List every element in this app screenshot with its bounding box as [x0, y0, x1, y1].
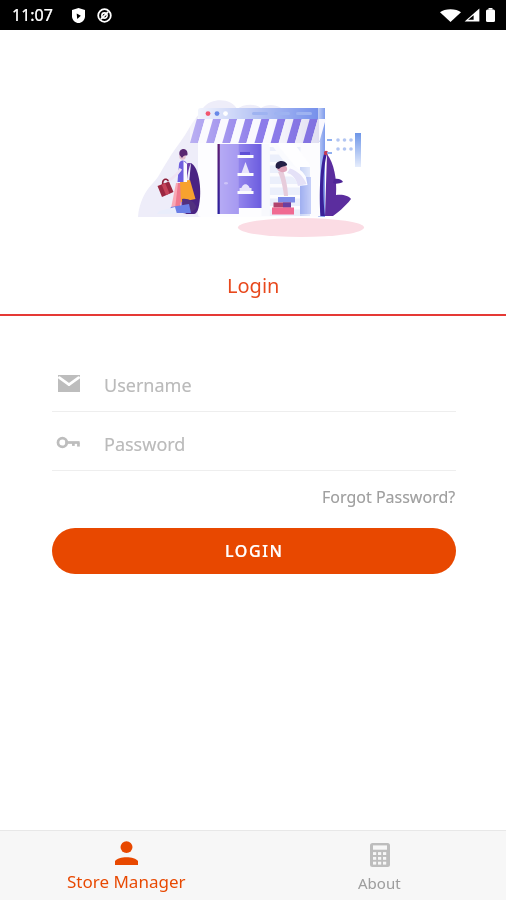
- staticText: Password: [104, 432, 186, 457]
- button[interactable]: Forgot Password?: [322, 486, 456, 508]
- other: Do not disturb: [97, 8, 112, 23]
- staticText: About: [358, 873, 401, 893]
- other: Security: [72, 8, 85, 23]
- staticText: Login: [227, 272, 280, 299]
- staticText: LOGIN: [225, 540, 284, 562]
- staticText: 11:07: [12, 4, 53, 26]
- button[interactable]: About: [253, 831, 506, 900]
- button[interactable]: Login: [0, 270, 506, 300]
- button[interactable]: Store Manager: [0, 831, 253, 900]
- staticText: Username: [104, 373, 192, 398]
- staticText: Store Manager: [67, 870, 186, 893]
- button[interactable]: Password: [0, 431, 506, 475]
- button[interactable]: LOGIN: [52, 528, 456, 574]
- other: Store Manager: [115, 841, 138, 865]
- button[interactable]: Username: [0, 372, 506, 416]
